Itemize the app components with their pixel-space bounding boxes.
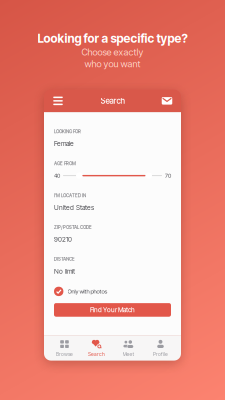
- button[interactable]: Search: [80, 335, 112, 361]
- staticText: Choose exactly: [81, 46, 143, 58]
- staticText: Search: [100, 96, 124, 106]
- staticText: 70: [165, 172, 171, 179]
- button[interactable]: LOOKING FOR: [54, 129, 171, 147]
- button[interactable]: Browse: [48, 335, 80, 361]
- button[interactable]: Only with photos: [54, 287, 171, 296]
- staticText: Find Your Match: [90, 306, 135, 314]
- button[interactable]: DISTANCE: [54, 257, 171, 275]
- staticText: Browse: [56, 351, 73, 357]
- staticText: DISTANCE: [54, 256, 75, 262]
- staticText: Female: [54, 140, 74, 148]
- button[interactable]: Menu: [49, 90, 67, 112]
- button[interactable]: Meet: [112, 335, 144, 361]
- staticText: ZIP/POSTAL CODE: [54, 225, 92, 230]
- staticText: Only with photos: [68, 288, 108, 295]
- staticText: who you want: [84, 58, 140, 70]
- staticText: AGE FROM: [54, 161, 76, 166]
- staticText: 90210: [54, 235, 72, 243]
- staticText: Meet: [122, 351, 134, 357]
- button[interactable]: ZIP/POSTAL CODE: [54, 225, 171, 243]
- button[interactable]: I'M LOCATED IN: [54, 193, 171, 211]
- button[interactable]: Messages: [158, 90, 176, 112]
- button[interactable]: Profile: [144, 335, 176, 361]
- staticText: LOOKING FOR: [54, 129, 81, 134]
- staticText: Looking for a specific type?: [37, 31, 187, 45]
- staticText: Profile: [153, 351, 168, 357]
- button[interactable]: Find Your Match: [54, 303, 171, 317]
- staticText: I'M LOCATED IN: [54, 193, 86, 198]
- staticText: No limit: [54, 267, 75, 275]
- staticText: Search: [88, 351, 105, 357]
- staticText: 40: [54, 172, 60, 179]
- staticText: United States: [54, 204, 94, 212]
